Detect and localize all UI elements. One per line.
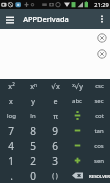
button[interactable]: 6: [44, 138, 66, 153]
button[interactable]: e: [44, 93, 66, 108]
staticText: 6: [52, 139, 58, 153]
button[interactable]: Add: [66, 153, 88, 168]
button[interactable]: 8: [22, 123, 44, 138]
button[interactable]: 0: [22, 168, 44, 183]
staticText: .: [10, 169, 13, 183]
staticText: tan: [94, 127, 104, 135]
staticText: csc: [95, 82, 104, 90]
button[interactable]: Divide: [66, 108, 88, 123]
button[interactable]: sen: [88, 153, 110, 168]
staticText: log: [7, 112, 16, 120]
staticText: ln: [30, 112, 36, 120]
staticText: cot: [95, 112, 104, 120]
button[interactable]: .: [0, 168, 22, 183]
button[interactable]: 2: [22, 153, 44, 168]
staticText: 3: [52, 154, 58, 168]
button[interactable]: tan: [88, 123, 110, 138]
staticText: 9: [52, 124, 58, 138]
staticText: 21:29: [94, 1, 109, 9]
button[interactable]: Backspace: [66, 168, 88, 183]
staticText: 4: [8, 139, 14, 153]
button[interactable]: log: [0, 108, 22, 123]
button[interactable]: ˣ√y: [66, 79, 88, 93]
button[interactable]: RESOLVER: [88, 168, 110, 183]
button[interactable]: 3: [44, 153, 66, 168]
button[interactable]: cos: [88, 138, 110, 153]
button[interactable]: Subtract: [66, 123, 88, 138]
staticText: 2: [30, 154, 36, 168]
button[interactable]: 7: [0, 123, 22, 138]
button[interactable]: π: [44, 108, 66, 123]
button[interactable]: csc: [88, 79, 110, 93]
staticText: e: [53, 96, 58, 106]
staticText: cos: [94, 142, 104, 150]
button[interactable]: 1: [0, 153, 22, 168]
staticText: APPDerivada: [23, 14, 69, 24]
button[interactable]: abc: [66, 93, 88, 108]
button[interactable]: x: [0, 93, 22, 108]
button[interactable]: 5: [22, 138, 44, 153]
staticText: ˣ√y: [72, 81, 83, 91]
staticText: √x: [51, 81, 60, 91]
staticText: sec: [94, 97, 104, 105]
staticText: x²: [8, 81, 15, 91]
staticText: ( ): [52, 171, 58, 180]
button[interactable]: x²: [0, 79, 22, 93]
button[interactable]: 9: [44, 123, 66, 138]
button[interactable]: Clear: [96, 48, 107, 59]
staticText: sen: [94, 157, 104, 165]
button[interactable]: xⁿ: [22, 79, 44, 93]
staticText: x: [9, 96, 13, 106]
button[interactable]: Navigation menu: [0, 9, 19, 29]
button[interactable]: Multiply: [66, 138, 88, 153]
button[interactable]: cot: [88, 108, 110, 123]
staticText: 5: [30, 139, 36, 153]
staticText: xⁿ: [30, 81, 37, 91]
staticText: y: [31, 96, 35, 106]
button[interactable]: √x: [44, 79, 66, 93]
button[interactable]: ln: [22, 108, 44, 123]
staticText: RESOLVER: [89, 173, 110, 179]
staticText: abc: [72, 97, 82, 105]
button[interactable]: sec: [88, 93, 110, 108]
staticText: 8: [30, 124, 36, 138]
button[interactable]: y: [22, 93, 44, 108]
staticText: 1: [8, 154, 14, 168]
button[interactable]: 4: [0, 138, 22, 153]
button[interactable]: Clear: [96, 32, 107, 43]
staticText: 7: [8, 124, 14, 138]
staticText: 0: [30, 169, 36, 183]
button[interactable]: More options: [94, 9, 110, 29]
button[interactable]: ( ): [44, 168, 66, 183]
staticText: π: [53, 111, 58, 121]
